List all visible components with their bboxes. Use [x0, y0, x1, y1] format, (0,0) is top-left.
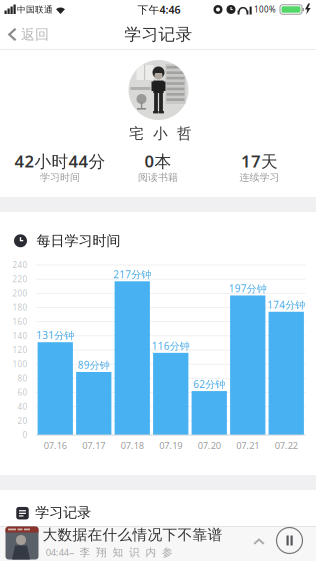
- staticText: 100%: [254, 4, 276, 15]
- staticText: 100: [12, 359, 27, 370]
- staticText: 180: [12, 302, 27, 313]
- staticText: 197分钟: [229, 282, 267, 295]
- staticText: 04:44: [46, 546, 69, 558]
- staticText: 07.21: [236, 439, 259, 452]
- staticText: 40: [17, 401, 27, 412]
- staticText: 07.16: [44, 439, 67, 452]
- staticText: 07.17: [82, 439, 105, 452]
- staticText: 07.20: [198, 439, 221, 452]
- staticText: 返回: [21, 26, 49, 43]
- staticText: 下午4:46: [137, 2, 180, 17]
- staticText: 0: [22, 430, 27, 440]
- staticText: 连续学习: [239, 171, 279, 184]
- staticText: 89分钟: [78, 358, 110, 372]
- staticText: 140: [12, 330, 27, 341]
- staticText: 116分钟: [152, 339, 190, 353]
- staticText: 0本: [144, 150, 171, 172]
- staticText: 07.18: [121, 439, 144, 452]
- staticText: 大数据在什么情况下不靠谱: [43, 526, 223, 544]
- staticText: 217分钟: [113, 267, 151, 281]
- button[interactable]: 展开播放器: [247, 531, 270, 552]
- staticText: 62分钟: [193, 377, 225, 391]
- staticText: 131分钟: [36, 328, 74, 342]
- button[interactable]: 暂停: [276, 527, 302, 553]
- staticText: 240: [12, 260, 27, 270]
- staticText: 200: [12, 288, 27, 299]
- staticText: 80: [17, 373, 27, 384]
- staticText: 阅读书籍: [138, 171, 178, 184]
- button[interactable]: 大数据在什么情况下不靠谱: [0, 526, 244, 561]
- staticText: 学习记录: [124, 24, 192, 45]
- staticText: 160: [12, 316, 27, 327]
- staticText: 07.22: [275, 439, 298, 452]
- staticText: 中国联通: [17, 4, 53, 15]
- staticText: 学习时间: [40, 171, 80, 184]
- staticText: 宅小哲: [129, 124, 192, 143]
- staticText: 07.19: [159, 439, 182, 452]
- staticText: 220: [12, 274, 27, 285]
- staticText: 60: [17, 387, 27, 398]
- staticText: 42小时44分: [14, 150, 105, 172]
- staticText: 每日学习时间: [36, 232, 120, 250]
- button[interactable]: 返回: [0, 19, 66, 49]
- staticText: 20: [17, 415, 27, 426]
- staticText: –李翔知识内参: [69, 545, 173, 559]
- staticText: 120: [12, 345, 27, 355]
- staticText: 174分钟: [267, 298, 305, 311]
- staticText: 17天: [241, 150, 278, 172]
- staticText: 学习记录: [35, 504, 91, 521]
